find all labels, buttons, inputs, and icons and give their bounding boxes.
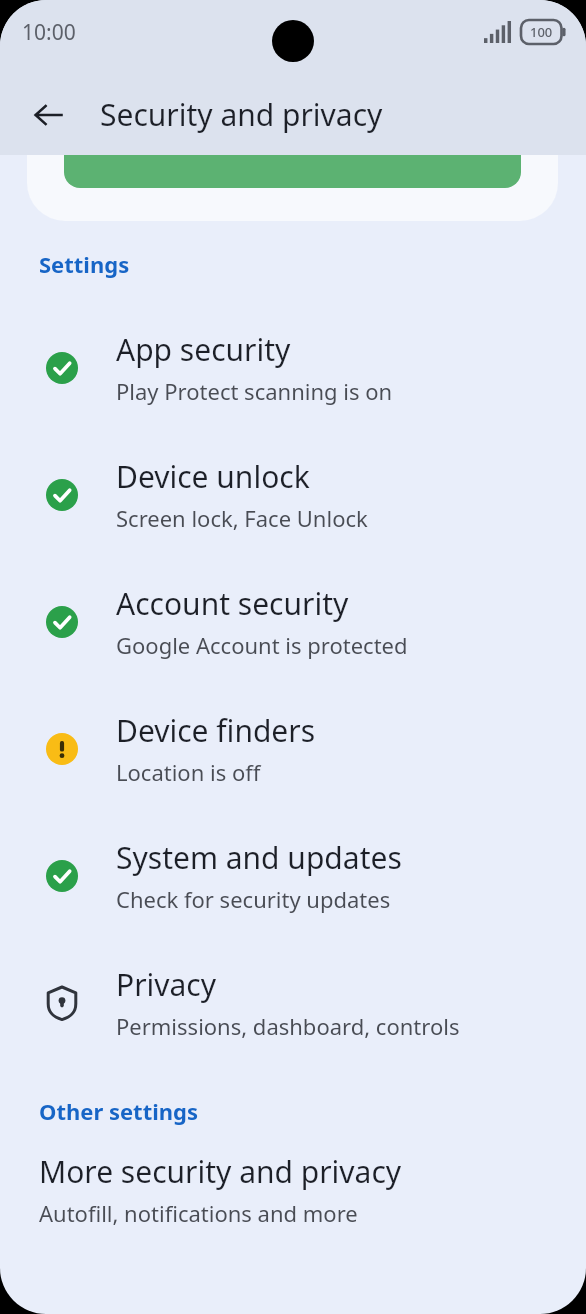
button[interactable]: Device finders (0, 685, 586, 812)
staticText: Autofill, notifications and more (39, 1198, 358, 1228)
button[interactable]: Privacy (0, 939, 586, 1066)
button[interactable]: More security and privacy (0, 1151, 586, 1228)
staticText: System and updates (116, 837, 402, 878)
button[interactable] (27, 155, 558, 221)
staticText: Check for security updates (116, 884, 391, 914)
staticText: Security and privacy (100, 94, 383, 135)
staticText: 10:00 (22, 18, 76, 47)
staticText: Device unlock (116, 456, 310, 497)
staticText: Screen lock, Face Unlock (116, 503, 368, 533)
staticText: Location is off (116, 757, 261, 787)
button[interactable]: Account security (0, 558, 586, 685)
staticText: 100 (530, 23, 553, 41)
button[interactable]: System and updates (0, 812, 586, 939)
staticText: More security and privacy (39, 1151, 402, 1192)
button[interactable]: App security (0, 304, 586, 431)
staticText: Google Account is protected (116, 630, 408, 660)
staticText: Play Protect scanning is on (116, 376, 393, 406)
staticText: Settings (39, 249, 130, 279)
staticText: Other settings (39, 1096, 199, 1126)
staticText: Privacy (116, 964, 217, 1005)
staticText: Account security (116, 583, 349, 624)
staticText: App security (116, 329, 291, 370)
staticText: Permissions, dashboard, controls (116, 1011, 460, 1041)
button[interactable]: Device unlock (0, 431, 586, 558)
button[interactable]: Back (17, 84, 79, 146)
staticText: Device finders (116, 710, 316, 751)
